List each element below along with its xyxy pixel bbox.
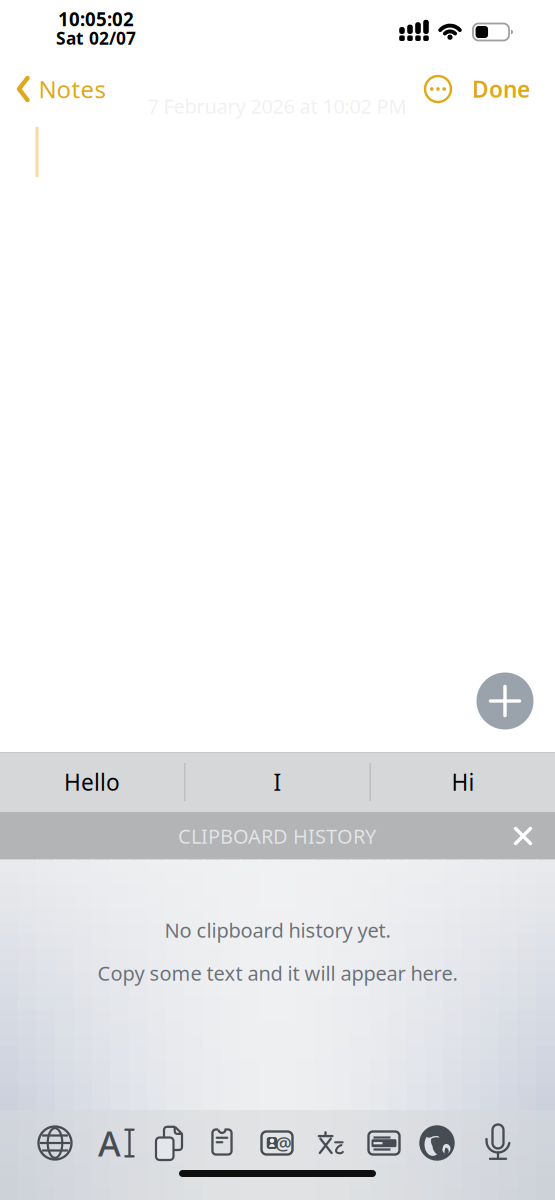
- staticText: I: [273, 767, 281, 797]
- staticText: Notes: [38, 73, 105, 105]
- button[interactable]: Contact AutoFill: [251, 1114, 303, 1172]
- staticText: Hi: [451, 767, 474, 797]
- button[interactable]: More: [423, 74, 453, 104]
- button[interactable]: Text Assist: [90, 1114, 142, 1172]
- button[interactable]: Clipboard: [196, 1113, 248, 1171]
- button[interactable]: Web: [411, 1114, 463, 1172]
- button[interactable]: Copy: [143, 1114, 195, 1172]
- staticText: CLIPBOARD HISTORY: [178, 823, 376, 849]
- button[interactable]: Translate: [305, 1114, 357, 1172]
- staticText: A: [98, 1120, 121, 1166]
- button[interactable]: Hello: [0, 752, 184, 812]
- button[interactable]: Dictation: [472, 1113, 524, 1171]
- button[interactable]: Hi: [371, 752, 555, 812]
- button[interactable]: Close: [501, 814, 545, 858]
- button[interactable]: Text Field: [358, 1114, 410, 1172]
- staticText: Sat 02/07: [56, 26, 136, 49]
- staticText: 7 February 2026 at 10:02 PM: [147, 93, 406, 119]
- staticText: Hello: [64, 767, 120, 797]
- staticText: No clipboard history yet.: [164, 917, 390, 943]
- button[interactable]: Done: [472, 74, 530, 104]
- button[interactable]: Next Keyboard: [29, 1114, 81, 1172]
- button[interactable]: Add: [476, 672, 533, 729]
- staticText: 10:05:02: [58, 7, 134, 31]
- staticText: Done: [472, 74, 530, 104]
- button[interactable]: Notes: [16, 73, 105, 105]
- staticText: @: [275, 1131, 292, 1155]
- button[interactable]: I: [185, 752, 369, 812]
- staticText: Copy some text and it will appear here.: [97, 960, 457, 986]
